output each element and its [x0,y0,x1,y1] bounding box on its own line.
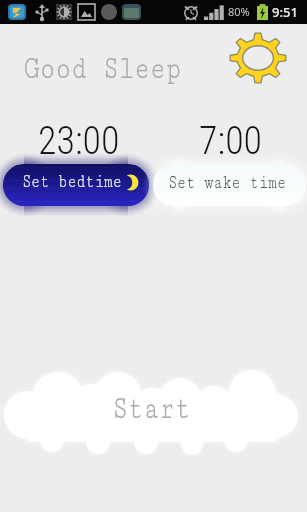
staticText: 23:00 [38,119,120,164]
staticText: Good Sleep [24,47,182,87]
staticText: Set wake time [168,172,287,194]
staticText: Start [112,387,191,427]
button[interactable]: Start [0,360,307,460]
button[interactable]: Settings [230,33,286,83]
staticText: 7:00 [199,119,263,164]
button[interactable]: Set wake time [148,152,307,214]
button[interactable]: Set bedtime [0,152,152,214]
staticText: 9:51 [272,3,298,21]
staticText: 80% [228,4,250,19]
staticText: Set bedtime [22,171,122,194]
